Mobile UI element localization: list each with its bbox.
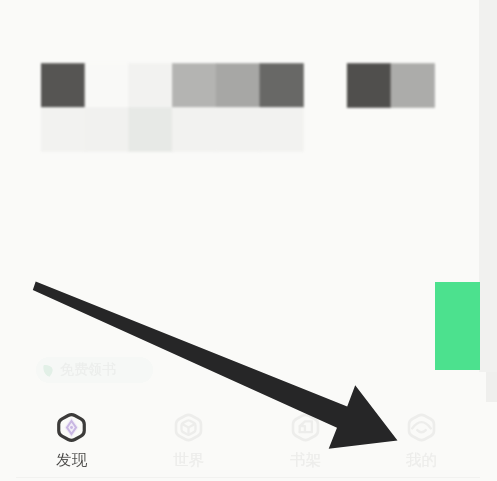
button[interactable]: 发现 [13,391,130,481]
staticText: 世界 [173,450,204,470]
staticText: 发现 [56,450,87,470]
button[interactable]: 书架 [247,391,364,481]
staticText: 书架 [290,450,321,470]
staticText: 我的 [406,450,437,470]
button[interactable]: 我的 [363,391,480,481]
button[interactable]: 免费领书 [36,357,153,383]
staticText: 免费领书 [60,361,116,379]
